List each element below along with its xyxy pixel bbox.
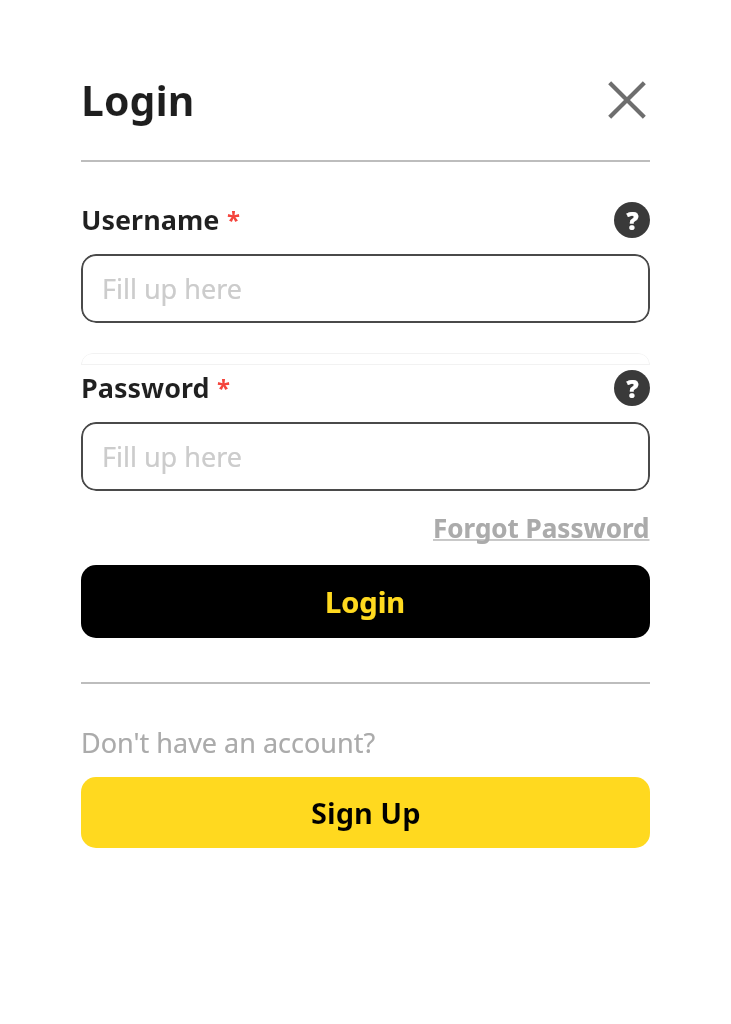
button[interactable]: Sign Up xyxy=(81,777,650,848)
staticText: Password xyxy=(81,369,210,406)
staticText: Don't have an account? xyxy=(81,724,376,761)
staticText: Fill up here xyxy=(102,438,242,475)
staticText: ? xyxy=(626,372,639,405)
button[interactable]: Close xyxy=(604,77,650,123)
button[interactable]: Help xyxy=(614,370,650,406)
button[interactable]: Fill up here xyxy=(81,254,650,323)
staticText: Forgot Password xyxy=(433,510,650,545)
staticText: Sign Up xyxy=(311,793,421,832)
button[interactable]: Fill up here xyxy=(81,422,650,491)
button[interactable]: Login xyxy=(81,565,650,638)
staticText: * xyxy=(217,371,231,404)
staticText: Login xyxy=(325,582,406,621)
button[interactable]: Forgot Password xyxy=(433,510,650,545)
staticText: * xyxy=(227,203,241,236)
staticText: Fill up here xyxy=(102,270,242,307)
staticText: Login xyxy=(81,72,195,128)
staticText: ? xyxy=(626,204,639,237)
staticText: Username xyxy=(81,201,220,238)
button[interactable]: Help xyxy=(614,202,650,238)
